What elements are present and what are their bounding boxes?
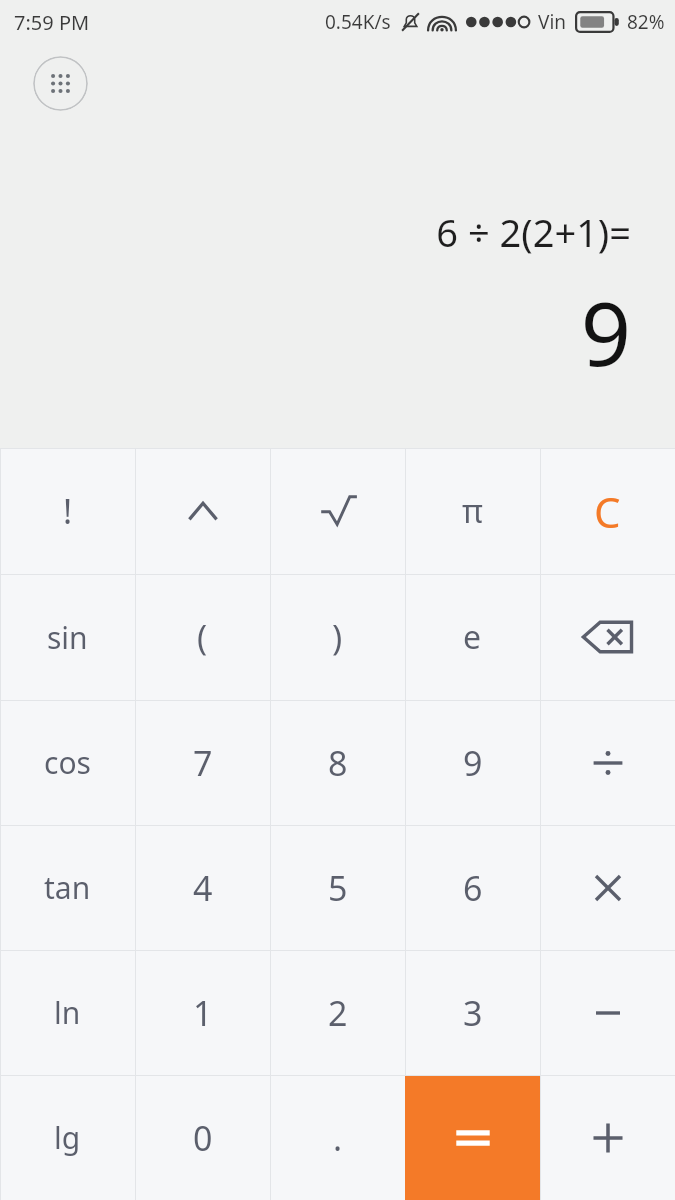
staticText: π <box>462 489 483 533</box>
button[interactable]: . <box>270 1075 405 1200</box>
staticText: ln <box>54 992 81 1033</box>
button[interactable]: Multiply <box>540 825 675 950</box>
staticText: 82% <box>627 9 665 35</box>
button[interactable]: ln <box>0 950 135 1075</box>
button[interactable]: 1 <box>135 950 270 1075</box>
button[interactable]: 4 <box>135 825 270 950</box>
staticText: 4 <box>193 865 213 911</box>
staticText: 9 <box>580 272 631 392</box>
staticText: 7 <box>193 740 213 786</box>
staticText: 1 <box>193 990 213 1036</box>
staticText: 7:59 PM <box>14 9 90 36</box>
button[interactable]: Add <box>540 1075 675 1200</box>
staticText: ) <box>332 614 343 660</box>
button[interactable]: 6 <box>405 825 540 950</box>
staticText: 0.54K/s <box>325 9 391 35</box>
staticText: . <box>333 1115 343 1161</box>
staticText: ( <box>197 614 208 660</box>
staticText: ! <box>63 488 73 534</box>
button[interactable]: Subtract <box>540 950 675 1075</box>
staticText: 2 <box>328 990 348 1036</box>
button[interactable]: ( <box>135 574 270 700</box>
staticText: 6 <box>463 865 483 911</box>
staticText: Vin <box>538 9 567 35</box>
button[interactable]: 2 <box>270 950 405 1075</box>
button[interactable]: Apps <box>33 56 88 111</box>
staticText: e <box>463 615 482 659</box>
button[interactable]: sin <box>0 574 135 700</box>
button[interactable]: C <box>540 448 675 574</box>
button[interactable]: 5 <box>270 825 405 950</box>
staticText: cos <box>44 742 91 783</box>
button[interactable]: ! <box>0 448 135 574</box>
button[interactable]: Square root <box>270 448 405 574</box>
staticText: 6 ÷ 2(2+1)= <box>436 206 631 258</box>
button[interactable]: Backspace <box>540 574 675 700</box>
button[interactable]: Equals <box>405 1075 540 1200</box>
staticText: C <box>594 483 621 540</box>
button[interactable]: 0 <box>135 1075 270 1200</box>
button[interactable]: 7 <box>135 700 270 825</box>
staticText: 5 <box>328 865 348 911</box>
button[interactable]: lg <box>0 1075 135 1200</box>
button[interactable]: 3 <box>405 950 540 1075</box>
staticText: 9 <box>463 740 483 786</box>
button[interactable]: 9 <box>405 700 540 825</box>
staticText: 3 <box>463 990 483 1036</box>
button[interactable]: e <box>405 574 540 700</box>
staticText: lg <box>54 1117 81 1158</box>
staticText: sin <box>47 617 88 658</box>
button[interactable]: π <box>405 448 540 574</box>
staticText: tan <box>44 867 91 908</box>
button[interactable]: Power <box>135 448 270 574</box>
button[interactable]: cos <box>0 700 135 825</box>
button[interactable]: 8 <box>270 700 405 825</box>
staticText: 0 <box>193 1115 213 1161</box>
button[interactable]: Divide <box>540 700 675 825</box>
button[interactable]: tan <box>0 825 135 950</box>
staticText: 8 <box>328 740 348 786</box>
button[interactable]: ) <box>270 574 405 700</box>
